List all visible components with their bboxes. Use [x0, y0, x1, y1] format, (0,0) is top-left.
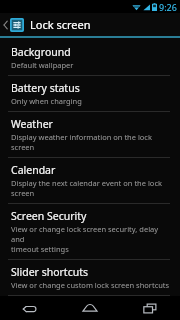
staticText: Screen Security — [11, 209, 87, 223]
button[interactable]: Back — [0, 296, 60, 320]
button[interactable]: Background — [0, 40, 180, 75]
staticText: Battery status — [11, 81, 80, 95]
staticText: timeout settings — [11, 244, 69, 254]
staticText: Weather — [11, 117, 53, 131]
button[interactable]: Slider shortcuts — [0, 260, 180, 295]
staticText: screen — [11, 188, 35, 198]
staticText: Background — [11, 45, 71, 59]
staticText: Default wallpaper — [11, 60, 74, 70]
button[interactable]: Home — [60, 296, 120, 320]
staticText: View or change custom lock screen shortc… — [11, 280, 170, 290]
staticText: Slider shortcuts — [11, 265, 88, 279]
button[interactable]: Recent apps — [120, 296, 180, 320]
staticText: Lock screen — [30, 17, 91, 32]
staticText: Display the next calendar event on the l… — [11, 178, 163, 188]
staticText: Calendar — [11, 163, 56, 177]
staticText: 9:26 — [159, 1, 177, 13]
staticText: Display weather information on the lock … — [11, 132, 172, 152]
button[interactable]: Navigate up — [0, 13, 26, 36]
button[interactable]: Weather — [0, 112, 180, 157]
button[interactable]: Calendar — [0, 158, 180, 203]
button[interactable]: Screen Security — [0, 204, 180, 259]
staticText: View or change lock screen security, del… — [11, 224, 172, 244]
button[interactable]: Battery status — [0, 76, 180, 111]
staticText: Only when charging — [11, 96, 82, 106]
